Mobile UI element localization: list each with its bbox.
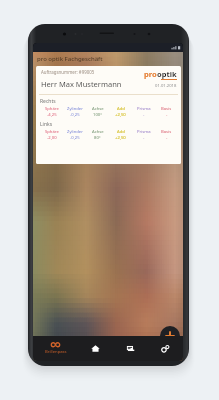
staticText: pro optik Fachgeschäft <box>37 55 103 63</box>
staticText: - <box>166 112 168 118</box>
button[interactable]: Einstellungen <box>148 336 183 361</box>
button[interactable]: Home <box>78 336 113 361</box>
staticText: -0,25 <box>70 112 80 118</box>
staticText: -0,25 <box>70 135 80 141</box>
staticText: 01.01.2018 <box>155 83 177 89</box>
staticText: +2,50 <box>115 112 126 118</box>
button[interactable]: Karten <box>113 336 148 361</box>
staticText: Sphäre <box>45 129 59 135</box>
staticText: -2,00 <box>47 135 57 141</box>
staticText: - <box>143 112 145 118</box>
staticText: Sphäre <box>45 106 59 112</box>
staticText: Rechts <box>40 98 56 105</box>
staticText: Zylinder <box>67 106 83 112</box>
staticText: Herr Max Mustermann <box>41 79 122 89</box>
staticText: Basis <box>161 106 172 112</box>
staticText: Zylinder <box>67 129 83 135</box>
staticText: Prisma <box>137 129 151 135</box>
staticText: Links <box>40 121 53 128</box>
staticText: 100° <box>93 112 102 118</box>
staticText: Add <box>117 106 125 112</box>
staticText: pro <box>144 69 157 79</box>
staticText: +2,50 <box>115 135 126 141</box>
staticText: - <box>143 135 145 141</box>
button[interactable]: Hinzufügen <box>160 326 180 346</box>
staticText: Auftragsnummer: #99005 <box>41 69 95 75</box>
staticText: Brillenpass <box>45 349 67 355</box>
staticText: 80° <box>94 135 101 141</box>
staticText: Achse <box>92 106 104 112</box>
staticText: optik <box>157 69 177 79</box>
button[interactable]: Brillenpass <box>33 342 78 355</box>
staticText: -4,25 <box>47 112 57 118</box>
staticText: Add <box>117 129 125 135</box>
staticText: Achse <box>92 129 104 135</box>
staticText: Basis <box>161 129 172 135</box>
staticText: Prisma <box>137 106 151 112</box>
staticText: - <box>166 135 168 141</box>
